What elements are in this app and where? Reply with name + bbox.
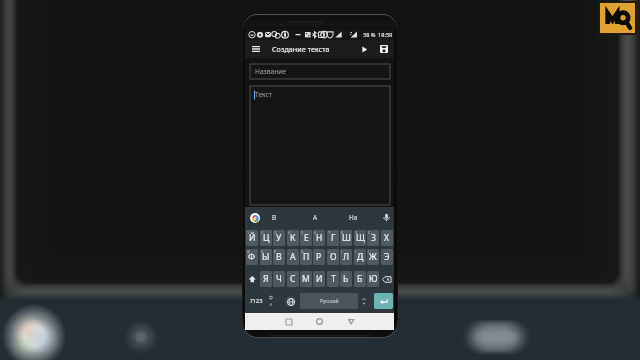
button[interactable]: Название	[250, 64, 390, 79]
button[interactable]: Щ	[354, 230, 366, 246]
button[interactable]: Ы	[260, 249, 272, 265]
staticText: Щ	[356, 232, 365, 244]
button[interactable]: Й	[246, 230, 258, 246]
staticText: )	[355, 249, 357, 254]
button[interactable]: Н	[313, 230, 325, 246]
button[interactable]: М	[300, 271, 312, 287]
button[interactable]: Period	[359, 293, 369, 309]
button[interactable]: Я	[260, 271, 272, 287]
button[interactable]: На	[340, 207, 366, 228]
button[interactable]: Д	[354, 249, 366, 265]
staticText: -	[314, 249, 316, 254]
button[interactable]: Ь	[340, 271, 352, 287]
button[interactable]: Ч	[273, 271, 285, 287]
button[interactable]: З	[367, 230, 379, 246]
button[interactable]: В	[273, 249, 285, 265]
staticText: /	[368, 249, 370, 254]
staticText: 38 %	[363, 31, 376, 39]
staticText: Р	[316, 251, 322, 263]
staticText: #	[261, 249, 264, 254]
button[interactable]: С	[287, 271, 299, 287]
staticText: 18:59	[378, 31, 393, 39]
staticText: Текст	[255, 90, 272, 99]
button[interactable]: И	[313, 271, 325, 287]
staticText: На	[349, 213, 358, 222]
staticText: Создание текста	[272, 44, 330, 54]
staticText: С	[290, 273, 296, 285]
staticText: Х	[384, 232, 390, 244]
button[interactable]: Enter	[374, 293, 393, 309]
button[interactable]: Play	[356, 40, 372, 58]
button[interactable]: В	[261, 207, 287, 228]
staticText: М	[302, 273, 310, 285]
staticText: В	[276, 251, 282, 263]
button[interactable]: О	[327, 249, 339, 265]
button[interactable]: Change keyboard language	[285, 296, 296, 307]
staticText: Название	[255, 67, 286, 76]
button[interactable]: Русский	[300, 293, 358, 309]
staticText: Л	[343, 251, 349, 263]
button[interactable]: Recents	[283, 313, 295, 330]
staticText: 6	[314, 230, 317, 235]
staticText: В	[272, 213, 277, 222]
staticText: (	[341, 249, 343, 254]
staticText: 5	[301, 230, 304, 235]
staticText: Н	[316, 232, 323, 244]
button[interactable]: Open navigation menu	[245, 40, 267, 58]
button[interactable]: Е	[300, 230, 312, 246]
button[interactable]: Save	[375, 40, 392, 58]
button[interactable]: Б	[354, 271, 366, 287]
button[interactable]: Г	[327, 230, 339, 246]
staticText: О	[330, 251, 337, 263]
button[interactable]: Shift	[246, 271, 258, 287]
staticText: К	[290, 232, 296, 244]
staticText: 9	[355, 230, 358, 235]
button[interactable]: Э	[381, 249, 393, 265]
button[interactable]: Ш	[340, 230, 352, 246]
button[interactable]: Back	[345, 313, 357, 330]
button[interactable]: А	[302, 207, 328, 228]
staticText: Ф	[248, 251, 256, 263]
staticText: 2	[261, 230, 264, 235]
button[interactable]: Текст	[250, 86, 390, 205]
staticText: Б	[357, 273, 363, 285]
staticText: 3	[274, 230, 277, 235]
staticText: Ч	[276, 273, 282, 285]
staticText: Ц	[263, 232, 270, 244]
staticText: Т	[331, 273, 336, 285]
button[interactable]: Voice input	[381, 211, 392, 224]
staticText: &	[301, 249, 304, 254]
staticText: Д	[357, 251, 364, 263]
staticText: 8	[341, 230, 344, 235]
button[interactable]: Backspace	[381, 271, 393, 287]
staticText: А	[290, 251, 296, 263]
staticText: У	[276, 232, 282, 244]
button[interactable]: А	[287, 249, 299, 265]
button[interactable]: Л	[340, 249, 352, 265]
button[interactable]: Ю	[367, 271, 379, 287]
button[interactable]: П	[300, 249, 312, 265]
staticText: +	[328, 249, 331, 254]
staticText: П	[303, 251, 310, 263]
button[interactable]: Р	[313, 249, 325, 265]
staticText: Ь	[343, 273, 349, 285]
button[interactable]: Ж	[367, 249, 379, 265]
staticText: 1	[247, 230, 250, 235]
button[interactable]: Х	[381, 230, 393, 246]
button[interactable]: У	[273, 230, 285, 246]
button[interactable]: Ц	[260, 230, 272, 246]
staticText: Я	[263, 273, 269, 285]
button[interactable]: Google search	[250, 213, 260, 223]
button[interactable]: MQ logo	[600, 3, 635, 33]
staticText: И	[316, 273, 323, 285]
button[interactable]: К	[287, 230, 299, 246]
button[interactable]: Home	[313, 313, 325, 330]
staticText: Э	[384, 251, 390, 263]
button[interactable]: Comma and symbols	[265, 293, 276, 309]
staticText: ₽	[274, 249, 277, 254]
staticText: Ж	[369, 251, 377, 263]
button[interactable]: Ф	[246, 249, 258, 265]
button[interactable]: ?123	[247, 293, 265, 309]
staticText: Ю	[369, 273, 378, 285]
button[interactable]: Т	[327, 271, 339, 287]
